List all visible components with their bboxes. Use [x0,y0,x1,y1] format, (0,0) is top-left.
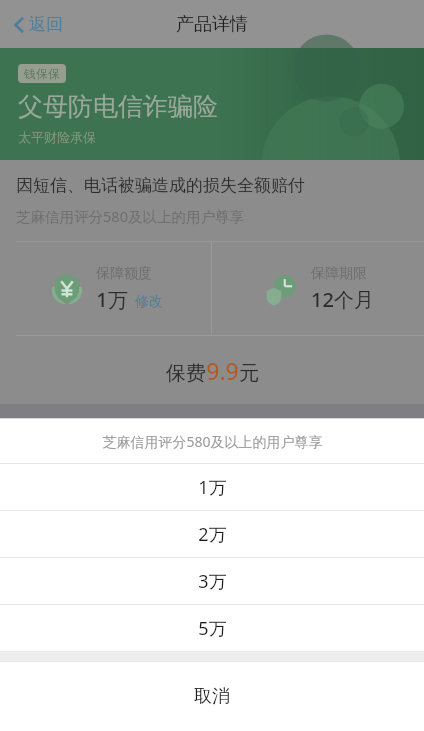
staticText: 5万 [198,616,227,641]
button[interactable]: 3万 [0,558,424,604]
staticText: 钱保保 [24,66,60,81]
staticText: 9.9 [206,355,239,386]
staticText: 父母防电信诈骗险 [18,91,218,122]
staticText: 因短信、电话被骗造成的损失全额赔付 [16,175,305,196]
button[interactable]: 5万 [0,605,424,651]
staticText: 3万 [198,569,227,594]
staticText: 返回 [29,14,63,35]
staticText: 芝麻信用评分580及以上的用户尊享 [102,432,323,451]
staticText: 1万 [198,475,227,500]
staticText: 保费 [166,361,206,386]
button[interactable]: 取消 [0,662,424,731]
staticText: 12个月 [311,286,374,313]
staticText: 保障期限 [311,265,367,283]
staticText: 1万 [96,286,128,313]
staticText: 取消 [194,685,230,708]
button[interactable]: 1万 [0,464,424,510]
button[interactable]: 2万 [0,511,424,557]
button[interactable]: 保障期限 [212,242,424,335]
staticText: 元 [239,361,259,386]
button[interactable]: 返回 [10,8,67,41]
staticText: 太平财险承保 [18,129,96,145]
staticText: 保障额度 [96,265,152,283]
staticText: 芝麻信用评分580及以上的用户尊享 [16,206,244,226]
staticText: 2万 [198,522,227,547]
staticText: 修改 [135,293,163,311]
staticText: 产品详情 [176,13,248,36]
button[interactable]: 保障额度 [0,242,211,335]
